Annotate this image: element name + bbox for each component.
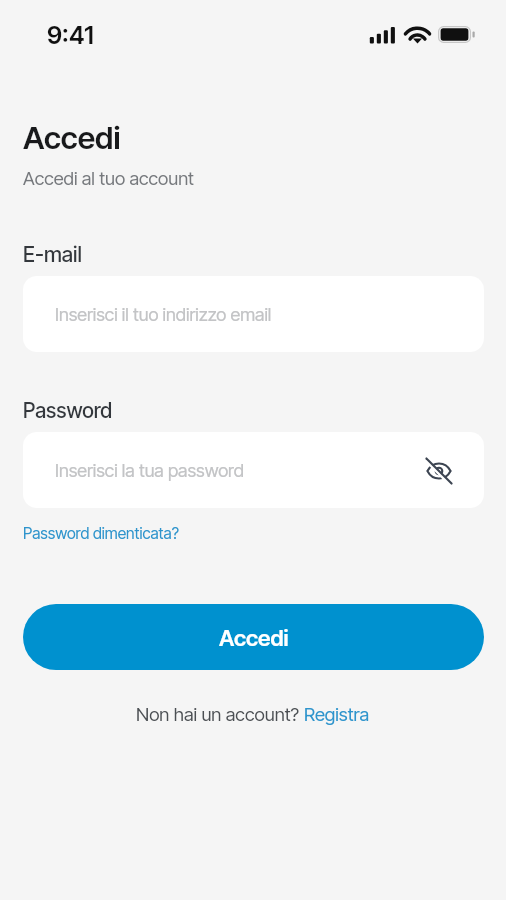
- button[interactable]: Password dimenticata?: [23, 524, 179, 543]
- staticText: Inserisci la tua password: [55, 459, 244, 481]
- staticText: Accedi: [219, 624, 289, 651]
- button[interactable]: Registra: [304, 703, 370, 726]
- staticText: E-mail: [23, 241, 82, 267]
- button[interactable]: Accedi: [23, 604, 484, 670]
- staticText: Inserisci il tuo indirizzo email: [55, 303, 272, 325]
- button[interactable]: Inserisci la tua password: [23, 432, 484, 508]
- staticText: Password: [23, 398, 113, 423]
- staticText: 9:41: [47, 20, 94, 50]
- staticText: Accedi: [23, 119, 121, 157]
- button[interactable]: Mostra password: [416, 448, 462, 494]
- button[interactable]: Inserisci il tuo indirizzo email: [23, 276, 484, 352]
- staticText: Accedi al tuo account: [23, 167, 194, 189]
- staticText: Non hai un account?: [136, 703, 304, 726]
- staticText: Password dimenticata?: [23, 524, 179, 543]
